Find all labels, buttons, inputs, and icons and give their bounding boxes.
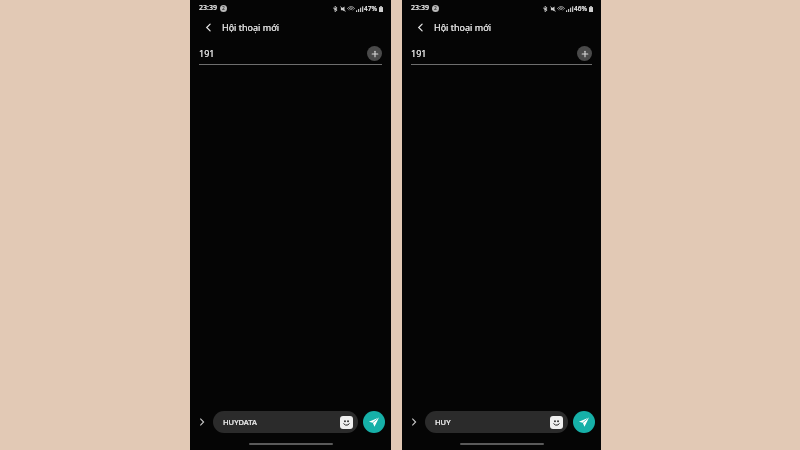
staticText: Hội thoại mới	[434, 21, 492, 33]
button[interactable]: Send	[363, 411, 385, 433]
staticText: Hội thoại mới	[222, 21, 280, 33]
button[interactable]: HUY	[425, 411, 568, 433]
staticText: HUYDATA	[223, 417, 257, 427]
staticText: 46%	[574, 4, 587, 13]
button[interactable]: Stickers	[550, 416, 563, 429]
staticText: 2	[434, 5, 437, 12]
staticText: HUY	[435, 417, 451, 427]
staticText: 191	[411, 47, 427, 59]
button[interactable]: Expand options	[406, 414, 422, 430]
button[interactable]: HUYDATA	[213, 411, 358, 433]
button[interactable]: Send	[573, 411, 595, 433]
button[interactable]: Back	[198, 17, 218, 37]
button[interactable]: Add recipient	[367, 46, 382, 61]
staticText: 47%	[364, 4, 377, 13]
button[interactable]: Expand options	[194, 414, 210, 430]
staticText: 23:39	[411, 3, 429, 13]
button[interactable]: Add recipient	[577, 46, 592, 61]
staticText: 191	[199, 47, 215, 59]
staticText: 23:39	[199, 3, 217, 13]
button[interactable]: Back	[410, 17, 430, 37]
button[interactable]: Stickers	[340, 416, 353, 429]
staticText: 2	[222, 5, 225, 12]
